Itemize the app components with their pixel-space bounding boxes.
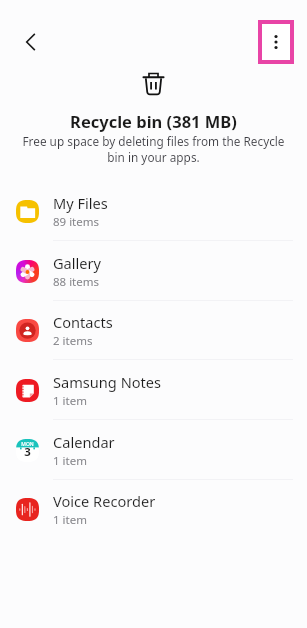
button[interactable]: Contacts (0, 300, 307, 360)
staticText: 3 (16, 444, 39, 460)
staticText: 1 item (53, 453, 87, 469)
button[interactable]: My Files (0, 181, 307, 241)
staticText: 1 item (53, 512, 87, 528)
button[interactable]: Voice Recorder (0, 479, 307, 539)
button[interactable]: Gallery (0, 241, 307, 301)
staticText: 88 items (53, 274, 100, 290)
button[interactable]: Navigate up (7, 18, 54, 65)
staticText: Gallery (53, 253, 102, 273)
button[interactable]: MON (0, 420, 307, 480)
staticText: Contacts (53, 312, 113, 332)
staticText: 89 items (53, 214, 100, 230)
button[interactable]: More options (262, 24, 290, 60)
staticText: Recycle bin (381 MB) (0, 110, 307, 132)
staticText: Samsung Notes (53, 372, 162, 392)
button[interactable]: Samsung Notes (0, 360, 307, 420)
staticText: Free up space by deleting files from the… (21, 133, 286, 165)
staticText: 2 items (53, 333, 93, 349)
staticText: MON (16, 441, 39, 448)
staticText: 1 item (53, 393, 87, 409)
staticText: My Files (53, 193, 108, 213)
staticText: Calendar (53, 432, 115, 452)
staticText: Voice Recorder (53, 491, 156, 511)
